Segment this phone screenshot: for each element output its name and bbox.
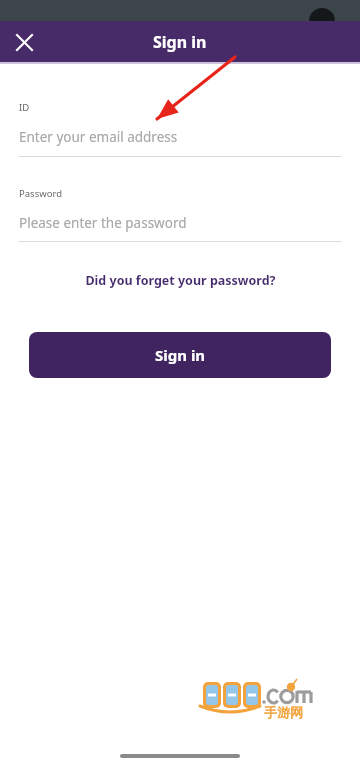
- button[interactable]: Sign in: [29, 332, 331, 378]
- staticText: ID: [19, 101, 30, 114]
- staticText: Password: [19, 187, 62, 200]
- button[interactable]: Enter your email address: [19, 123, 341, 151]
- button[interactable]: Please enter the password: [19, 209, 341, 237]
- staticText: Sign in: [153, 31, 207, 53]
- staticText: 手游网: [264, 704, 303, 720]
- staticText: Did you forget your password?: [85, 272, 276, 289]
- button[interactable]: Did you forget your password?: [0, 268, 360, 292]
- staticText: Sign in: [155, 345, 206, 365]
- staticText: Enter your email address: [19, 128, 178, 146]
- button[interactable]: Close: [8, 26, 40, 58]
- staticText: Please enter the password: [19, 214, 187, 232]
